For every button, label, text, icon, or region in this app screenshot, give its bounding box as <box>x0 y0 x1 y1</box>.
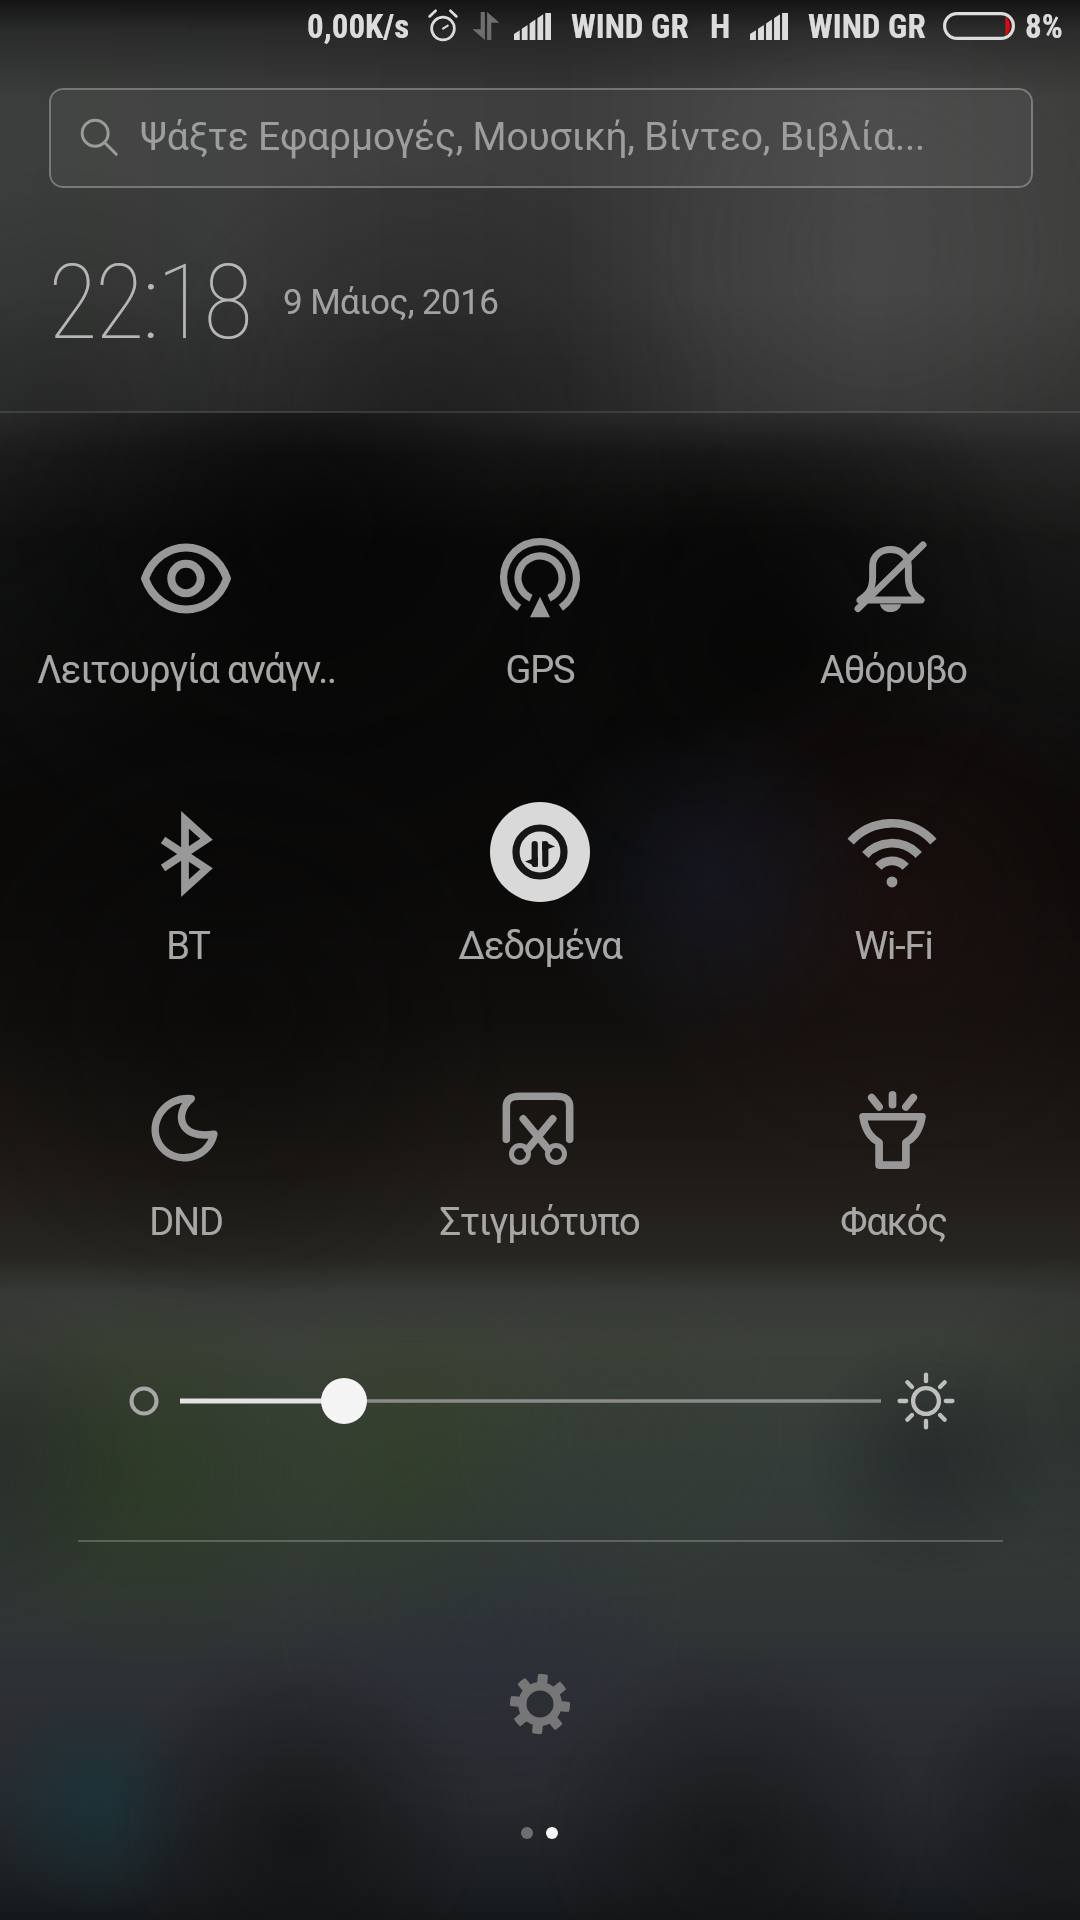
staticText: 0,00K/s <box>307 7 410 46</box>
staticText: 22:18 <box>48 242 251 363</box>
staticText: Ψάξτε Εφαρμογές, Μουσική, Βίντεο, Βιβλία… <box>140 114 926 160</box>
button[interactable] <box>9 460 363 710</box>
staticText: Δεδομένα <box>458 924 622 969</box>
staticText: Στιγμιότυπο <box>439 1200 640 1245</box>
staticText: Λειτουργία ανάγν.. <box>37 648 336 693</box>
button[interactable] <box>715 1012 1069 1262</box>
button[interactable] <box>8 1012 362 1262</box>
button[interactable] <box>363 460 717 710</box>
button[interactable] <box>713 459 1067 709</box>
staticText: DND <box>149 1200 223 1245</box>
staticText: GPS <box>505 648 575 693</box>
staticText: H <box>710 7 731 46</box>
staticText: 8% <box>1025 7 1063 46</box>
staticText: BT <box>166 924 210 969</box>
button[interactable]: Settings <box>500 1664 580 1744</box>
button[interactable] <box>363 734 717 984</box>
staticText: WIND GR <box>571 7 689 46</box>
button[interactable] <box>361 1012 715 1262</box>
button[interactable] <box>8 736 362 986</box>
staticText: 9 Μάιος, 2016 <box>283 282 499 323</box>
staticText: Φακός <box>840 1200 947 1245</box>
staticText: Αθόρυβο <box>820 648 967 693</box>
staticText: Wi-Fi <box>854 924 933 969</box>
button[interactable] <box>715 734 1069 984</box>
staticText: WIND GR <box>808 7 926 46</box>
button[interactable]: Brightness <box>110 1355 970 1449</box>
button[interactable]: Ψάξτε Εφαρμογές, Μουσική, Βίντεο, Βιβλία… <box>49 88 1033 188</box>
